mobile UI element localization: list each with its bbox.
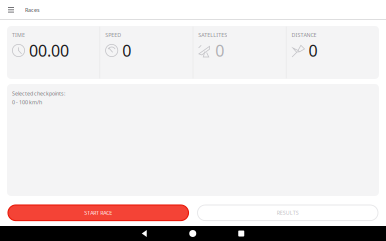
staticText: Races (25, 6, 40, 14)
staticText: 0 (215, 40, 224, 61)
staticText: 00.00 (29, 40, 69, 61)
button[interactable]: Home (168, 226, 217, 241)
staticText: 0 (122, 40, 131, 61)
staticText: SATELLITES (198, 31, 227, 39)
staticText: 0 (308, 40, 317, 61)
staticText: Selected checkpoints: (12, 90, 65, 97)
staticText: START RACE (84, 209, 112, 216)
button[interactable]: Recent apps (217, 226, 265, 241)
button[interactable]: START RACE (8, 205, 188, 221)
staticText: RESULTS (277, 209, 299, 216)
button[interactable]: Back (120, 226, 168, 241)
button[interactable]: RESULTS (197, 205, 378, 221)
staticText: DISTANCE (291, 31, 316, 39)
staticText: SPEED (105, 31, 121, 39)
button[interactable]: Menu (0, 0, 22, 19)
staticText: 0 - 100 km/h (12, 99, 42, 106)
staticText: TIME (12, 31, 25, 39)
